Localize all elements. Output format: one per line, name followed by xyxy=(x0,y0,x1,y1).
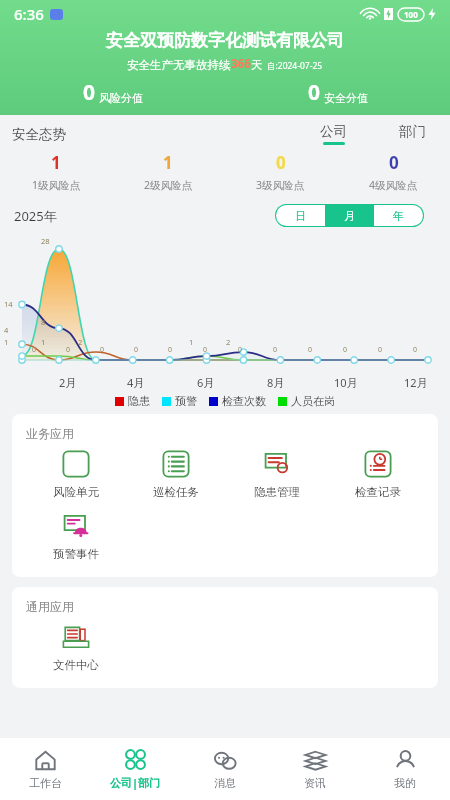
staticText: 安全生产无事故持续 xyxy=(127,58,231,72)
button[interactable]: 公司|部门 xyxy=(90,738,180,800)
staticText: 8 xyxy=(41,317,46,327)
staticText: 风险单元 xyxy=(53,485,99,499)
staticText: 1级风险点 xyxy=(32,178,81,192)
staticText: 366 xyxy=(231,56,251,72)
staticText: 0 xyxy=(276,151,286,174)
staticText: 2月 xyxy=(59,375,77,390)
staticText: 部门 xyxy=(399,123,426,140)
staticText: 0 xyxy=(273,345,278,355)
button[interactable]: 月 xyxy=(325,205,374,226)
staticText: 工作台 xyxy=(29,776,62,790)
staticText: 检查次数 xyxy=(222,394,266,408)
button[interactable]: 资讯 xyxy=(270,738,360,800)
staticText: 隐患 xyxy=(128,394,150,408)
staticText: 0 xyxy=(308,78,321,107)
staticText: 0 xyxy=(66,345,71,355)
staticText: 4月 xyxy=(127,375,145,390)
staticText: 0 xyxy=(413,345,418,355)
staticText: 月 xyxy=(344,209,355,223)
staticText: 4级风险点 xyxy=(369,178,418,192)
staticText: 2025年 xyxy=(14,207,57,225)
staticText: 安全态势 xyxy=(12,126,66,143)
staticText: 0 xyxy=(238,345,243,355)
staticText: 我的 xyxy=(394,776,416,790)
staticText: 公司 xyxy=(320,123,347,140)
button[interactable]: 年 xyxy=(374,205,423,226)
staticText: 0 xyxy=(343,345,348,355)
staticText: 日 xyxy=(295,209,306,223)
staticText: 自:2024-07-25 xyxy=(267,60,323,72)
staticText: 0 xyxy=(32,345,37,355)
staticText: 检查记录 xyxy=(355,485,401,499)
staticText: 2级风险点 xyxy=(144,178,193,192)
staticText: 预警 xyxy=(175,394,197,408)
staticText: 公司|部门 xyxy=(110,775,161,790)
button[interactable]: 我的 xyxy=(360,738,450,800)
staticText: 人员在岗 xyxy=(291,394,335,408)
button[interactable]: 预警事件 xyxy=(26,509,126,563)
staticText: 0 xyxy=(389,151,399,174)
staticText: 1 xyxy=(189,337,194,347)
button[interactable]: 文件中心 xyxy=(26,620,126,674)
button[interactable]: 巡检任务 xyxy=(126,447,226,501)
staticText: 安全双预防数字化测试有限公司 xyxy=(106,30,344,51)
staticText: 天 xyxy=(251,58,263,72)
staticText: 28 xyxy=(41,236,50,246)
staticText: 0 xyxy=(203,345,208,355)
button[interactable]: 部门 xyxy=(393,123,432,145)
staticText: 6:36 xyxy=(14,4,44,24)
staticText: 100 xyxy=(404,9,418,20)
button[interactable]: 工作台 xyxy=(0,738,90,800)
staticText: 6月 xyxy=(197,375,215,390)
staticText: 10月 xyxy=(334,375,358,390)
staticText: 3级风险点 xyxy=(256,178,305,192)
staticText: 业务应用 xyxy=(26,426,74,441)
staticText: 2 xyxy=(226,337,231,347)
staticText: 预警事件 xyxy=(53,547,99,561)
staticText: 消息 xyxy=(214,776,236,790)
button[interactable]: 隐患管理 xyxy=(226,447,327,501)
staticText: 0 xyxy=(378,345,383,355)
staticText: 1 xyxy=(51,151,61,174)
button[interactable]: 1 xyxy=(0,151,112,192)
button[interactable]: 1 xyxy=(112,151,224,192)
button[interactable]: 消息 xyxy=(180,738,270,800)
button[interactable]: 检查记录 xyxy=(327,447,428,501)
button[interactable]: 0 xyxy=(224,151,337,192)
staticText: 文件中心 xyxy=(53,658,99,672)
button[interactable]: 风险单元 xyxy=(26,447,126,501)
staticText: 4 xyxy=(4,325,9,335)
staticText: 14 xyxy=(4,299,13,309)
staticText: 0 xyxy=(100,345,105,355)
staticText: 隐患管理 xyxy=(254,485,300,499)
staticText: 1 xyxy=(41,337,46,347)
staticText: 风险分值 xyxy=(99,91,143,105)
staticText: 1 xyxy=(163,151,173,174)
staticText: 巡检任务 xyxy=(153,485,199,499)
button[interactable]: 公司 xyxy=(314,123,353,145)
staticText: 12月 xyxy=(404,375,428,390)
button[interactable]: 0 xyxy=(337,151,450,192)
staticText: 资讯 xyxy=(304,776,326,790)
staticText: 安全分值 xyxy=(324,91,368,105)
staticText: 0 xyxy=(308,345,313,355)
staticText: 通用应用 xyxy=(26,599,74,614)
staticText: 2 xyxy=(78,337,83,347)
staticText: 0 xyxy=(134,345,139,355)
button[interactable]: 日 xyxy=(276,205,325,226)
staticText: 0 xyxy=(168,345,173,355)
staticText: 年 xyxy=(393,209,404,223)
staticText: 8月 xyxy=(267,375,285,390)
staticText: 0 xyxy=(83,78,96,107)
staticText: 1 xyxy=(4,337,9,347)
